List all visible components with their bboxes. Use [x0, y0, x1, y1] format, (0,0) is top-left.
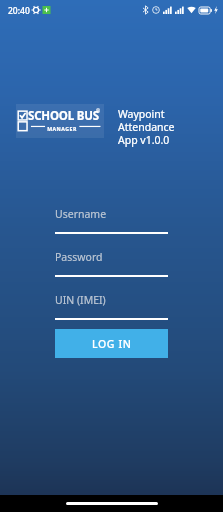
- staticText: SCHOOL BUS: [28, 108, 99, 124]
- button[interactable]: UIN (IMEI): [55, 293, 168, 320]
- staticText: UIN (IMEI): [55, 293, 106, 307]
- staticText: 20:40: [8, 5, 30, 17]
- staticText: MANAGER: [47, 125, 77, 132]
- staticText: Waypoint Attendance App v1.0.0: [118, 107, 213, 147]
- staticText: Password: [55, 250, 103, 264]
- staticText: LOG IN: [92, 337, 132, 351]
- button[interactable]: Username: [55, 207, 168, 234]
- button[interactable]: LOG IN: [55, 329, 168, 358]
- staticText: Username: [55, 207, 107, 221]
- staticText: ®: [96, 108, 101, 115]
- button[interactable]: Password: [55, 250, 168, 277]
